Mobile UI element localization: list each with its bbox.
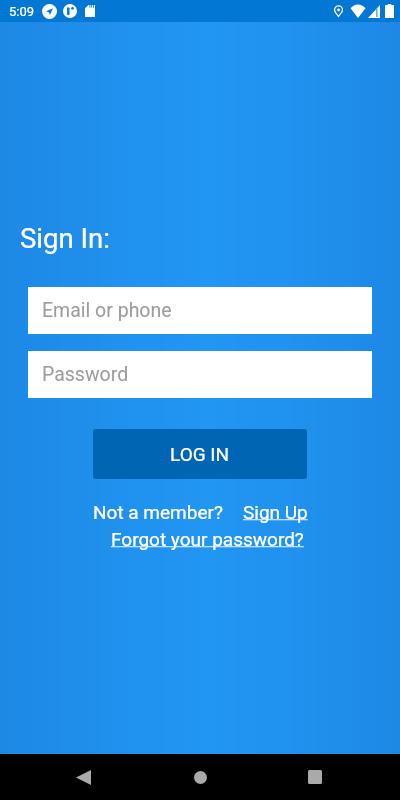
button[interactable]: Forgot your password? [111,528,304,550]
staticText: 5:09 [9,4,35,19]
staticText: Password [42,363,129,386]
staticText: Sign In: [20,222,110,254]
staticText: Sign Up [243,501,308,523]
button[interactable]: Sign Up [243,501,308,523]
button[interactable]: Back [59,754,107,800]
staticText: Email or phone [42,299,172,322]
button[interactable]: Recent apps [291,754,339,800]
button[interactable]: Email or phone [28,287,372,334]
staticText: Not a member? [93,501,223,523]
staticText: LOG IN [170,443,230,465]
button[interactable]: LOG IN [93,429,307,479]
button[interactable]: Password [28,351,372,398]
staticText: Forgot your password? [111,528,304,550]
button[interactable]: Home [176,754,224,800]
